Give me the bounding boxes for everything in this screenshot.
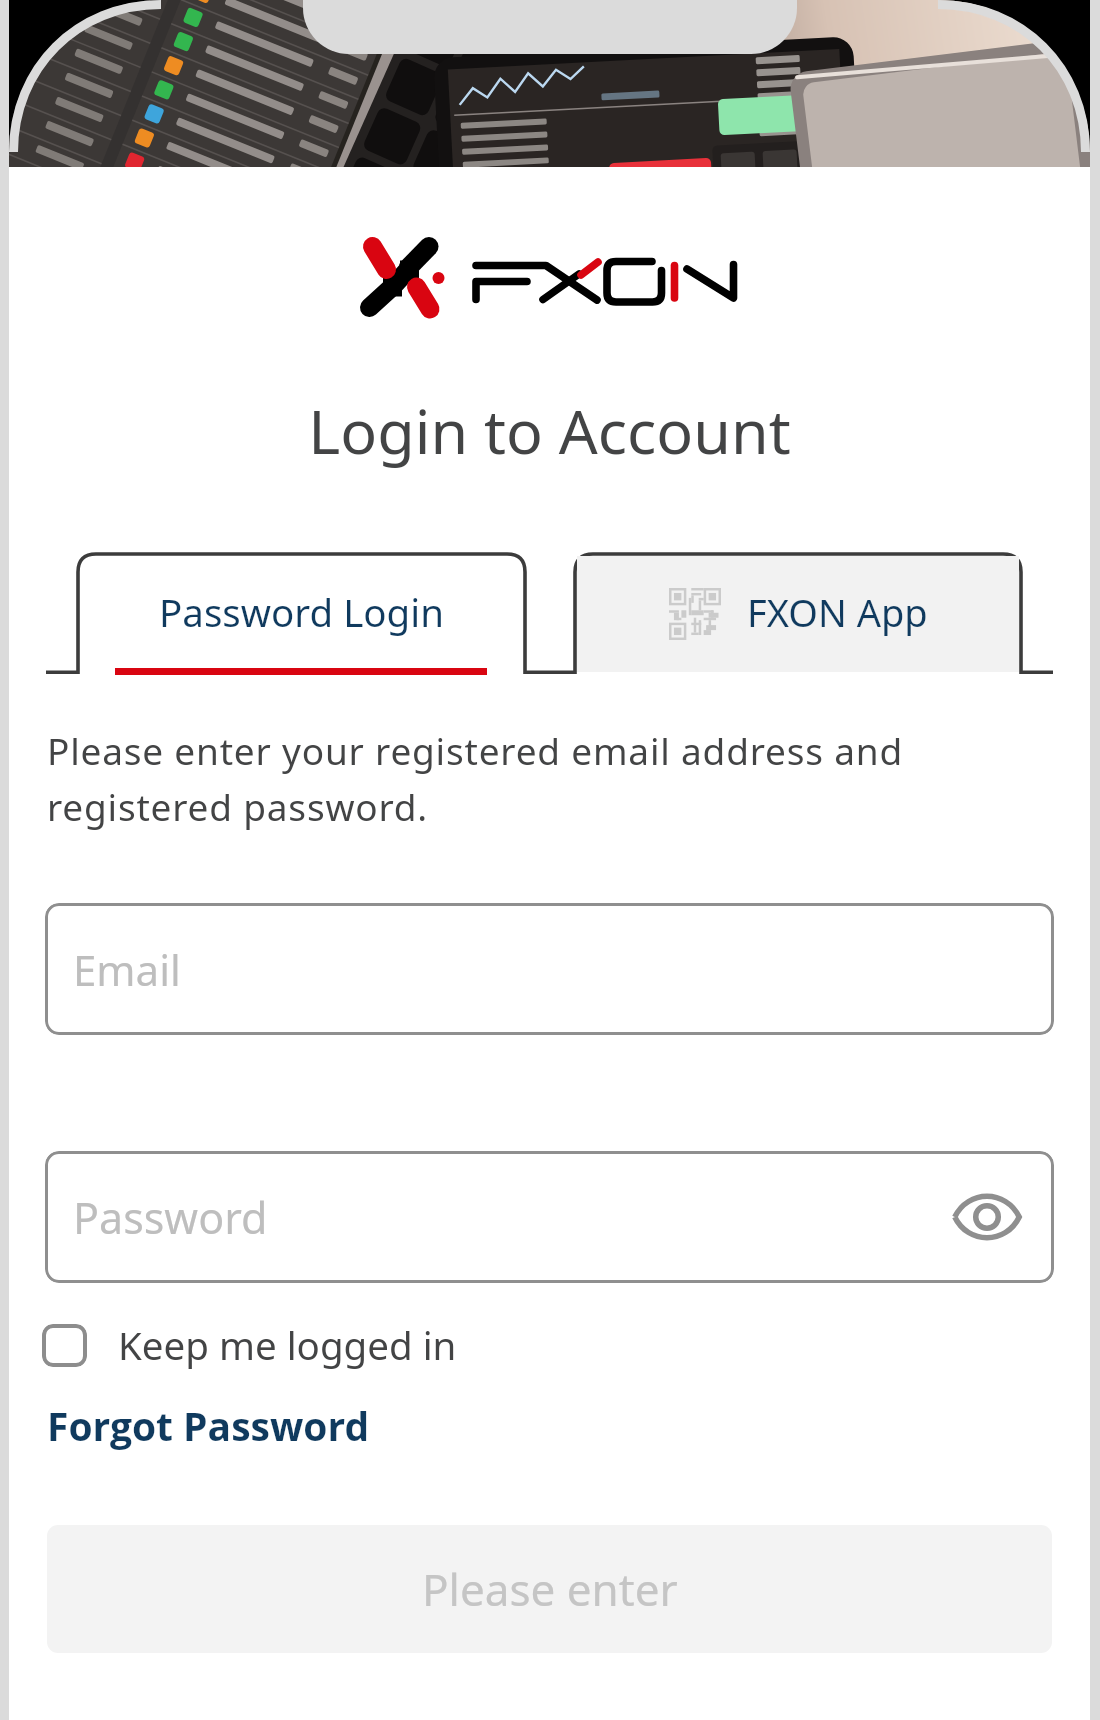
button[interactable]: Forgot Password: [47, 1399, 370, 1452]
staticText: Please enter: [422, 1559, 678, 1619]
button[interactable]: FXON App: [577, 556, 1019, 672]
button[interactable]: Password: [45, 1151, 1054, 1283]
staticText: Login to Account: [308, 389, 791, 472]
staticText: Email: [73, 941, 181, 998]
staticText: FXON App: [747, 586, 928, 638]
staticText: Password Login: [159, 586, 445, 638]
staticText: Please enter your registered email addre…: [47, 725, 917, 832]
staticText: Keep me logged in: [118, 1319, 457, 1371]
button[interactable]: Show password: [939, 1169, 1035, 1265]
button[interactable]: Email: [45, 903, 1054, 1035]
staticText: Password: [73, 1188, 268, 1247]
button[interactable]: Keep me logged in: [42, 1319, 457, 1371]
button[interactable]: Password Login: [80, 556, 524, 672]
button[interactable]: Please enter: [47, 1525, 1052, 1653]
